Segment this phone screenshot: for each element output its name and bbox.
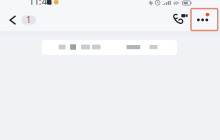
button[interactable]: More options [193,9,217,31]
button[interactable]: Call [172,13,188,27]
staticText: 11:44 [29,0,52,7]
button[interactable]: Back [4,12,21,27]
button[interactable]: 1 unread [21,15,36,25]
staticText: 1 [26,15,31,25]
